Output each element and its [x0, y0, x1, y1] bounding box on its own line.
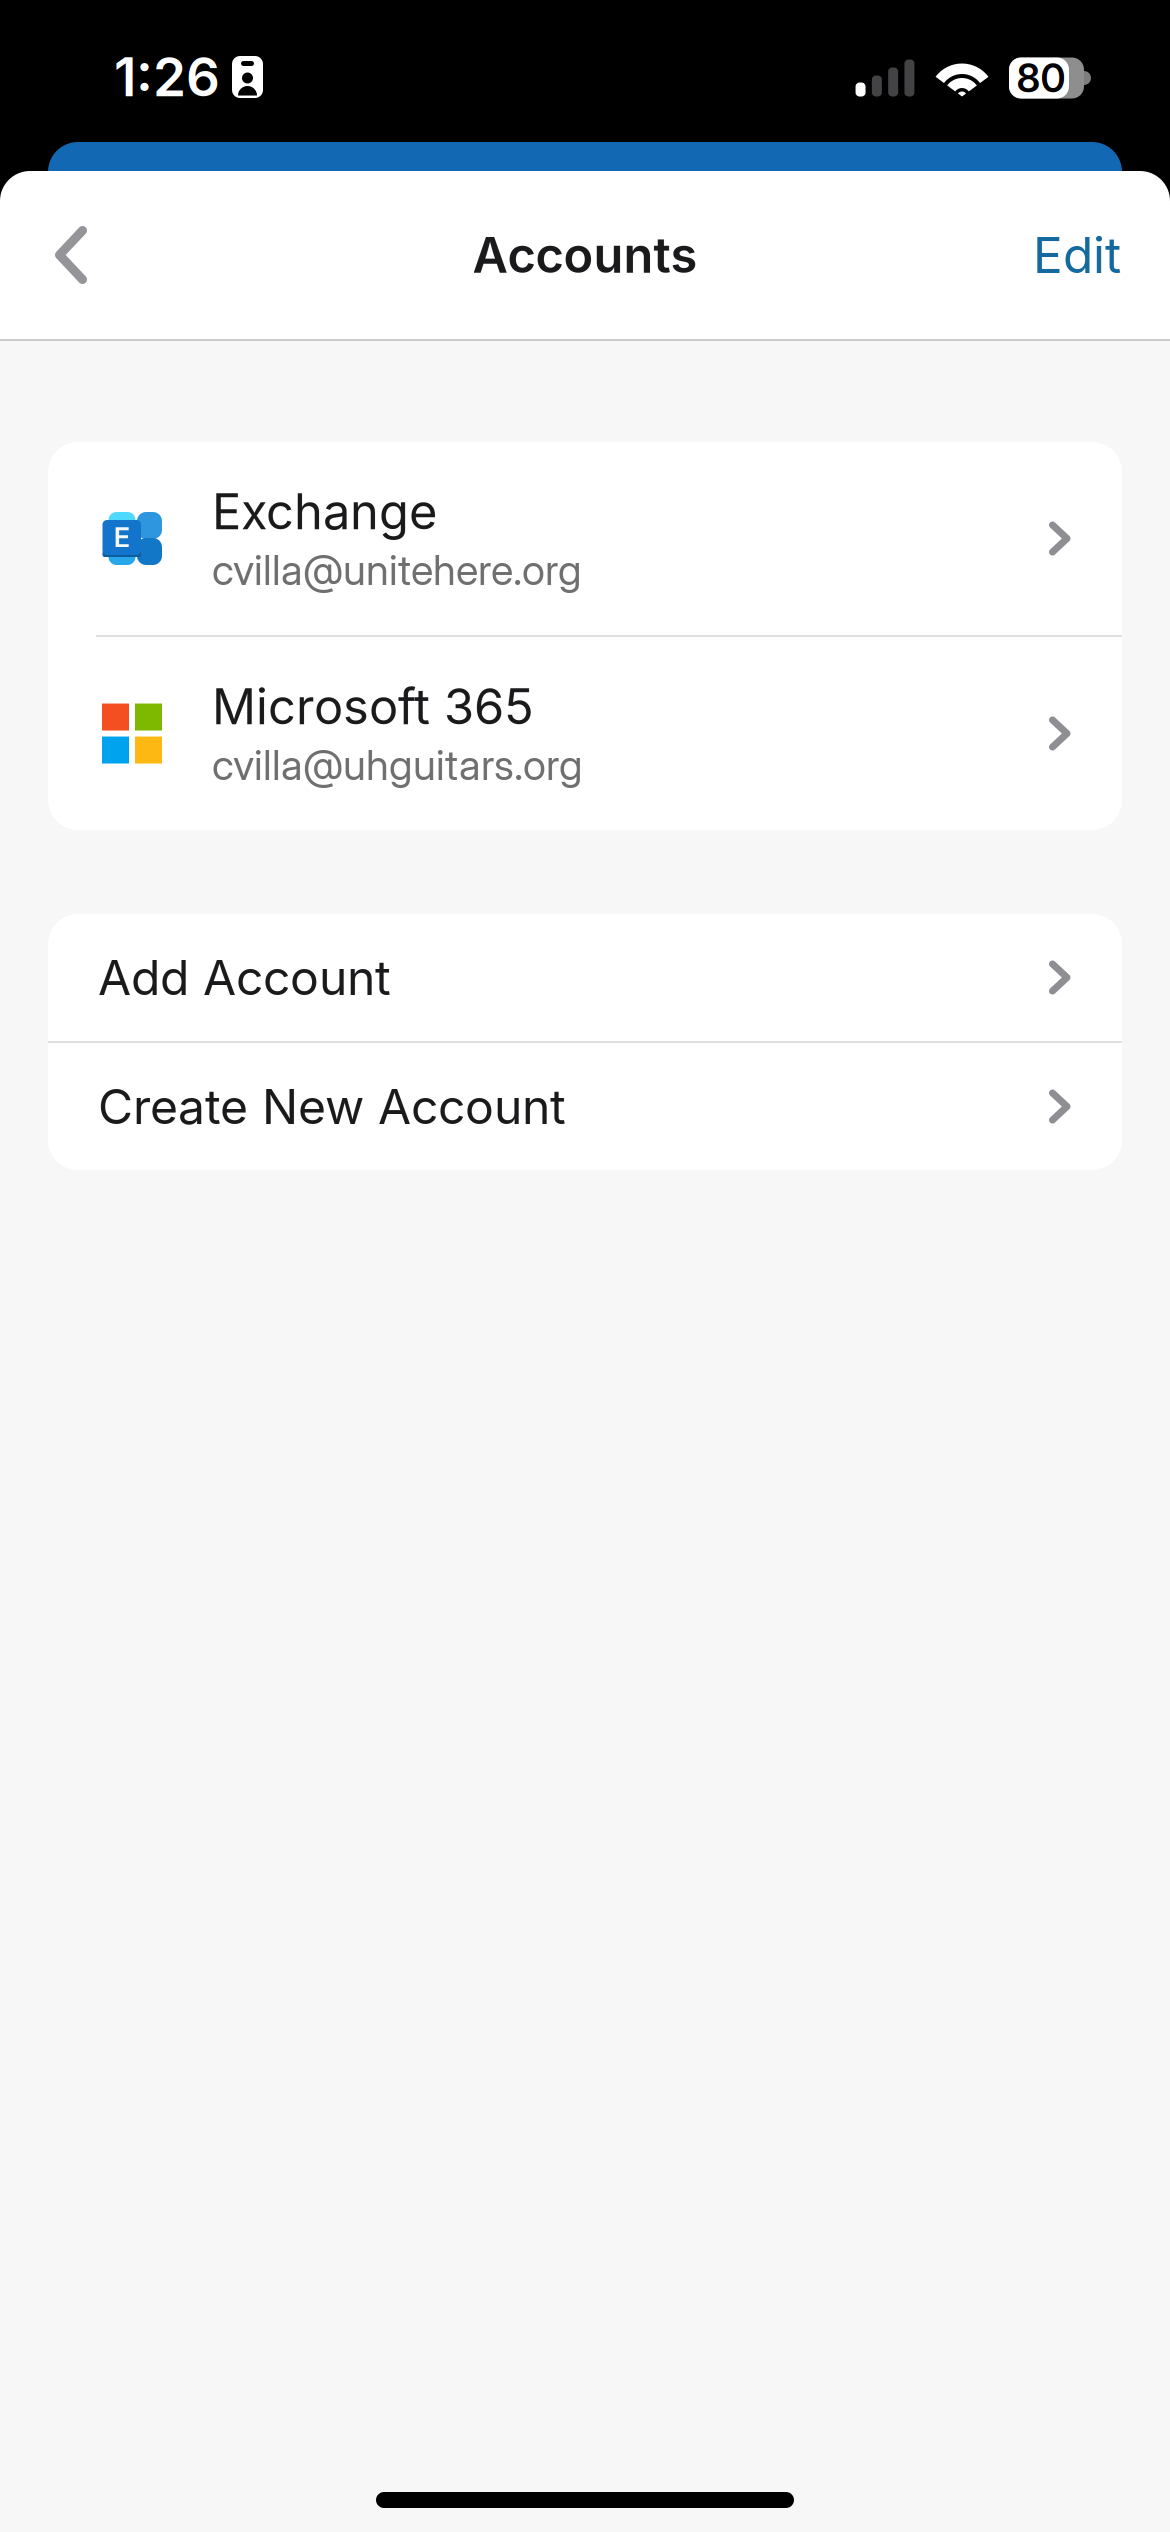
staticText: Exchange [212, 482, 437, 541]
staticText: E [114, 521, 130, 554]
staticText: cvilla@uhguitars.org [212, 740, 583, 790]
staticText: 80 [1016, 54, 1065, 102]
button[interactable]: E [48, 442, 1122, 635]
staticText: Microsoft 365 [212, 677, 534, 736]
button[interactable]: Back [0, 189, 131, 321]
staticText: cvilla@unitehere.org [212, 545, 582, 595]
button[interactable]: Create New Account [48, 1043, 1122, 1170]
staticText: Edit [1033, 225, 1121, 285]
staticText: Add Account [98, 948, 391, 1007]
button[interactable]: Edit [1033, 189, 1170, 321]
button[interactable]: Add Account [48, 914, 1122, 1041]
staticText: 1:26 [114, 45, 220, 109]
staticText: Create New Account [98, 1077, 566, 1136]
staticText: Accounts [472, 225, 697, 284]
button[interactable]: Microsoft 365 [48, 637, 1122, 830]
